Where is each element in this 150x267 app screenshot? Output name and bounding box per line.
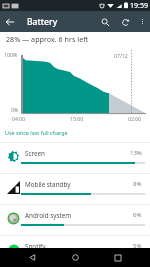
staticText: 02:00 — [128, 115, 142, 122]
staticText: Mobile standby — [25, 180, 71, 189]
staticText: Android system — [25, 211, 72, 220]
staticText: 07/12 — [114, 52, 128, 59]
button[interactable]: Back — [23, 248, 42, 267]
staticText: 13% — [130, 149, 142, 157]
button[interactable]: More options — [135, 14, 150, 29]
button[interactable]: Refresh — [115, 12, 135, 32]
button[interactable]: Home — [66, 248, 85, 267]
staticText: 28% — approx. 6 hrs left — [6, 34, 89, 44]
button[interactable]: Navigate up — [0, 12, 20, 32]
button[interactable]: Search — [95, 12, 115, 32]
staticText: 5% — [133, 242, 142, 250]
button[interactable]: Screen — [0, 142, 150, 173]
staticText: 100% — [4, 51, 18, 58]
staticText: 04:00 — [12, 115, 26, 122]
button[interactable]: Spotify — [0, 235, 150, 266]
staticText: Use since last full charge — [5, 129, 68, 136]
staticText: Spotify — [25, 242, 46, 251]
staticText: 19:59 — [130, 1, 148, 11]
button[interactable]: Use since last full charge — [0, 125, 150, 142]
staticText: 15:00 — [70, 115, 84, 122]
staticText: 8% — [133, 180, 142, 188]
button[interactable]: Mobile standby — [0, 173, 150, 204]
staticText: Battery — [27, 16, 58, 28]
staticText: 6% — [133, 211, 142, 219]
button[interactable]: Recent apps — [108, 248, 127, 267]
staticText: 0% — [11, 106, 19, 113]
staticText: Screen — [25, 149, 45, 158]
button[interactable]: Android system — [0, 204, 150, 235]
